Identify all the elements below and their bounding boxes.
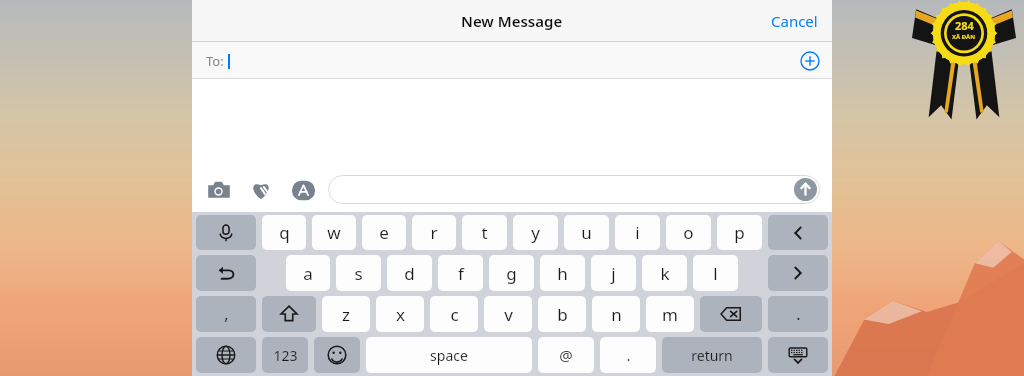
button[interactable]: u xyxy=(564,215,609,250)
staticText: . xyxy=(626,345,631,365)
staticText: k xyxy=(660,262,670,285)
button[interactable]: App Store xyxy=(288,175,318,205)
button[interactable]: j xyxy=(591,255,636,291)
staticText: z xyxy=(342,303,350,326)
button[interactable]: Cancel xyxy=(757,3,832,39)
staticText: j xyxy=(611,262,616,285)
button[interactable]: z xyxy=(322,296,370,332)
staticText: c xyxy=(450,303,459,326)
staticText: return xyxy=(691,346,733,365)
staticText: d xyxy=(404,262,415,285)
button[interactable]: m xyxy=(646,296,694,332)
staticText: To: xyxy=(206,52,224,70)
button[interactable]: Backspace xyxy=(700,296,762,332)
button[interactable]: . xyxy=(768,296,828,332)
button[interactable]: x xyxy=(376,296,424,332)
staticText: f xyxy=(458,262,464,285)
staticText: u xyxy=(581,221,592,244)
button[interactable]: i xyxy=(615,215,660,250)
staticText: , xyxy=(224,303,229,325)
staticText: 284 xyxy=(955,18,974,33)
button[interactable]: t xyxy=(462,215,507,250)
button[interactable]: Next keyboard xyxy=(196,337,256,373)
button[interactable]: Dictate xyxy=(196,215,256,250)
staticText: w xyxy=(327,221,341,244)
staticText: y xyxy=(531,221,540,244)
staticText: i xyxy=(635,221,640,244)
button[interactable]: Hide keyboard xyxy=(768,337,828,373)
button[interactable]: 123 xyxy=(262,337,308,373)
button[interactable]: n xyxy=(592,296,640,332)
button[interactable]: f xyxy=(438,255,483,291)
staticText: space xyxy=(430,346,468,365)
button[interactable]: q xyxy=(262,215,306,250)
button[interactable]: a xyxy=(286,255,330,291)
button[interactable]: Shift xyxy=(262,296,316,332)
staticText: p xyxy=(734,221,745,244)
button[interactable]: h xyxy=(540,255,585,291)
button[interactable]: r xyxy=(412,215,456,250)
button[interactable]: return xyxy=(662,337,762,373)
button[interactable]: Previous xyxy=(768,215,828,250)
button[interactable]: d xyxy=(387,255,432,291)
button[interactable]: space xyxy=(366,337,532,373)
staticText: o xyxy=(683,221,694,244)
button[interactable]: b xyxy=(538,296,586,332)
staticText: Cancel xyxy=(771,11,818,31)
staticText: 123 xyxy=(273,346,298,365)
button[interactable]: e xyxy=(362,215,406,250)
staticText: @ xyxy=(559,345,573,365)
staticText: v xyxy=(504,303,513,326)
button[interactable]: v xyxy=(484,296,532,332)
button[interactable]: Add contact xyxy=(800,51,820,71)
staticText: XÃ ĐÀN xyxy=(952,33,976,41)
button[interactable]: s xyxy=(336,255,381,291)
staticText: h xyxy=(557,262,568,285)
button[interactable]: Undo xyxy=(196,255,256,291)
button[interactable]: Send xyxy=(328,175,820,204)
staticText: q xyxy=(279,221,290,244)
button[interactable]: Digital Touch xyxy=(246,175,276,205)
button[interactable]: l xyxy=(693,255,738,291)
button[interactable]: Next xyxy=(768,255,828,291)
button[interactable]: c xyxy=(430,296,478,332)
staticText: n xyxy=(611,303,622,326)
button[interactable]: Emoji xyxy=(314,337,360,373)
button[interactable]: g xyxy=(489,255,534,291)
button[interactable]: Send xyxy=(793,177,818,202)
staticText: t xyxy=(481,221,488,244)
staticText: b xyxy=(557,303,568,326)
button[interactable]: . xyxy=(600,337,656,373)
staticText: New Message xyxy=(461,11,563,31)
button[interactable]: p xyxy=(717,215,762,250)
staticText: m xyxy=(662,303,678,326)
staticText: g xyxy=(506,262,517,285)
staticText: r xyxy=(430,221,438,244)
button[interactable]: w xyxy=(312,215,356,250)
button[interactable]: @ xyxy=(538,337,594,373)
button[interactable]: Camera xyxy=(204,175,234,205)
button[interactable]: k xyxy=(642,255,687,291)
staticText: s xyxy=(354,262,363,285)
button[interactable]: To: xyxy=(192,42,832,79)
staticText: a xyxy=(303,262,313,285)
staticText: e xyxy=(379,221,389,244)
staticText: l xyxy=(713,262,718,285)
button[interactable]: o xyxy=(666,215,711,250)
staticText: x xyxy=(396,303,405,326)
button[interactable]: , xyxy=(196,296,256,332)
staticText: . xyxy=(796,303,801,325)
button[interactable]: y xyxy=(513,215,558,250)
